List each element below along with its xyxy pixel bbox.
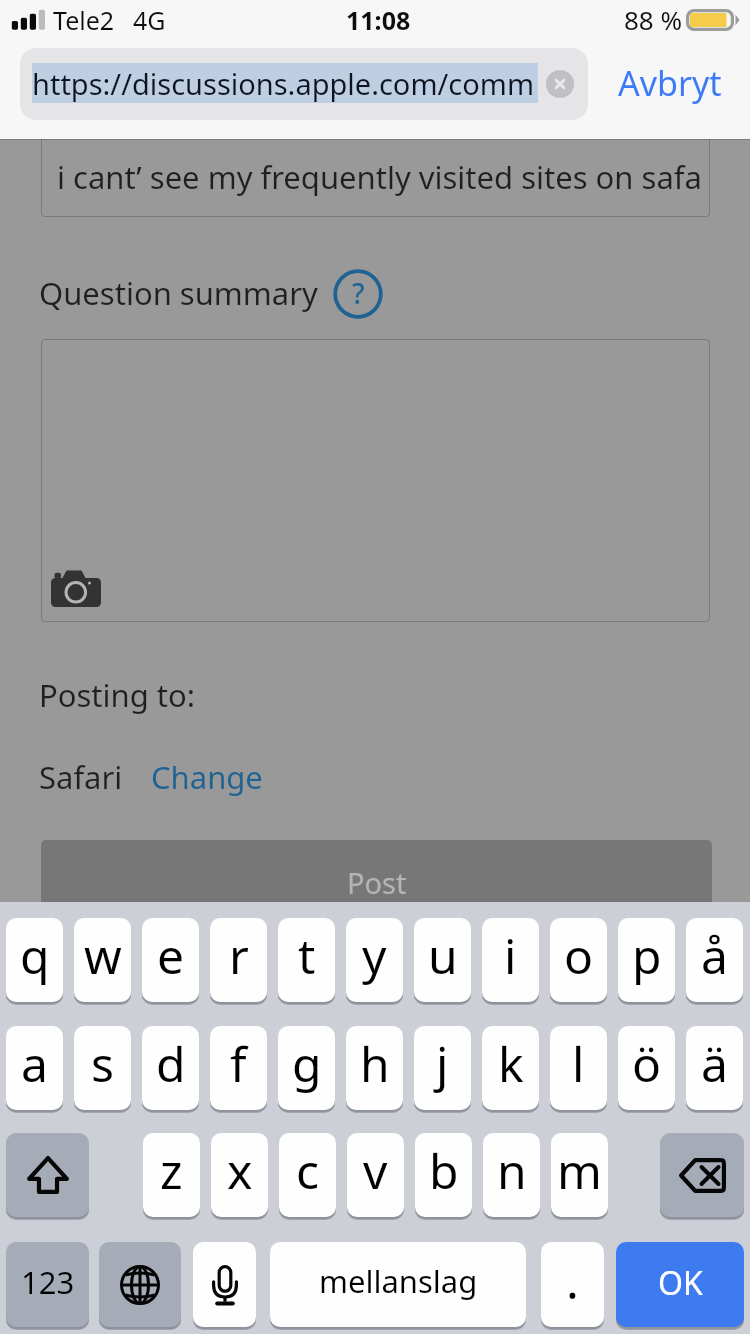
button[interactable]: v <box>347 1133 404 1217</box>
button[interactable]: r <box>210 918 267 1002</box>
staticText: l <box>572 1031 585 1096</box>
staticText: z <box>160 1138 183 1203</box>
button[interactable]: t <box>278 918 335 1002</box>
staticText: d <box>156 1031 186 1096</box>
button[interactable]: s <box>74 1026 131 1110</box>
button[interactable]: i <box>482 918 539 1002</box>
button[interactable]: n <box>483 1133 540 1217</box>
button[interactable]: y <box>346 918 403 1002</box>
button[interactable]: c <box>279 1133 336 1217</box>
button[interactable]: Help <box>333 269 383 319</box>
button[interactable]: Avbryt <box>598 48 742 120</box>
button[interactable]: f <box>210 1026 267 1110</box>
button[interactable]: p <box>618 918 675 1002</box>
button[interactable]: 123 <box>6 1242 89 1327</box>
button[interactable]: ä <box>686 1026 743 1110</box>
button[interactable]: Post <box>41 840 712 920</box>
button[interactable]: g <box>278 1026 335 1110</box>
staticText: q <box>20 923 50 988</box>
staticText: 123 <box>21 1261 75 1303</box>
staticText: Post <box>347 863 407 902</box>
staticText: https://discussions.apple.com/comm <box>32 64 534 103</box>
button[interactable]: m <box>551 1133 608 1217</box>
button[interactable]: Change <box>141 748 271 804</box>
staticText: c <box>296 1138 320 1203</box>
button[interactable]: b <box>415 1133 472 1217</box>
staticText: y <box>362 923 387 988</box>
staticText: ö <box>632 1031 662 1096</box>
button[interactable]: j <box>414 1026 471 1110</box>
button[interactable]: w <box>74 918 131 1002</box>
staticText: k <box>498 1031 524 1096</box>
staticText: b <box>429 1138 459 1203</box>
staticText: m <box>557 1138 602 1203</box>
staticText: e <box>157 923 185 988</box>
staticText: h <box>360 1031 390 1096</box>
button[interactable]: mellanslag <box>270 1242 526 1327</box>
staticText: r <box>229 923 249 988</box>
button[interactable]: https://discussions.apple.com/comm <box>20 48 588 120</box>
button[interactable]: OK <box>616 1242 744 1327</box>
staticText: Question summary <box>39 272 318 314</box>
staticText: Change <box>151 756 263 798</box>
staticText: ä <box>701 1031 728 1096</box>
staticText: t <box>298 923 316 988</box>
staticText: Posting to: <box>39 674 196 716</box>
staticText: a <box>21 1031 48 1096</box>
staticText: p <box>632 923 662 988</box>
button[interactable]: Dictate <box>193 1242 256 1327</box>
button[interactable]: l <box>550 1026 607 1110</box>
staticText: n <box>497 1138 527 1203</box>
staticText: x <box>227 1138 253 1203</box>
staticText: mellanslag <box>319 1260 478 1302</box>
button[interactable]: z <box>143 1133 200 1217</box>
button[interactable]: a <box>6 1026 63 1110</box>
button[interactable]: . <box>541 1242 604 1327</box>
staticText: w <box>84 923 122 988</box>
button[interactable]: Backspace <box>660 1133 744 1217</box>
staticText: u <box>428 923 458 988</box>
staticText: 4G <box>133 3 166 37</box>
staticText: å <box>701 923 728 988</box>
staticText: 88 % <box>624 2 683 37</box>
button[interactable]: e <box>142 918 199 1002</box>
staticText: Safari <box>39 756 123 798</box>
staticText: Tele2 <box>53 3 115 37</box>
button[interactable]: k <box>482 1026 539 1110</box>
staticText: i cant’ see my frequently visited sites … <box>57 156 702 198</box>
staticText: i <box>504 923 517 988</box>
button[interactable]: Next keyboard <box>99 1242 181 1327</box>
staticText: OK <box>658 1261 703 1305</box>
button[interactable]: å <box>686 918 743 1002</box>
staticText: . <box>566 1248 579 1313</box>
button[interactable]: ö <box>618 1026 675 1110</box>
staticText: Avbryt <box>618 60 722 106</box>
staticText: 11:08 <box>346 3 411 37</box>
button[interactable]: Shift <box>6 1133 89 1217</box>
button[interactable]: h <box>346 1026 403 1110</box>
staticText: o <box>564 923 594 988</box>
button[interactable]: x <box>211 1133 268 1217</box>
button[interactable]: d <box>142 1026 199 1110</box>
button[interactable]: u <box>414 918 471 1002</box>
staticText: s <box>91 1031 114 1096</box>
staticText: f <box>230 1031 247 1096</box>
button[interactable]: Clear text <box>546 70 574 98</box>
button[interactable]: q <box>6 918 63 1002</box>
staticText: v <box>363 1138 388 1203</box>
staticText: j <box>436 1031 449 1096</box>
button[interactable]: o <box>550 918 607 1002</box>
staticText: g <box>292 1031 322 1096</box>
staticText: ? <box>352 274 365 312</box>
